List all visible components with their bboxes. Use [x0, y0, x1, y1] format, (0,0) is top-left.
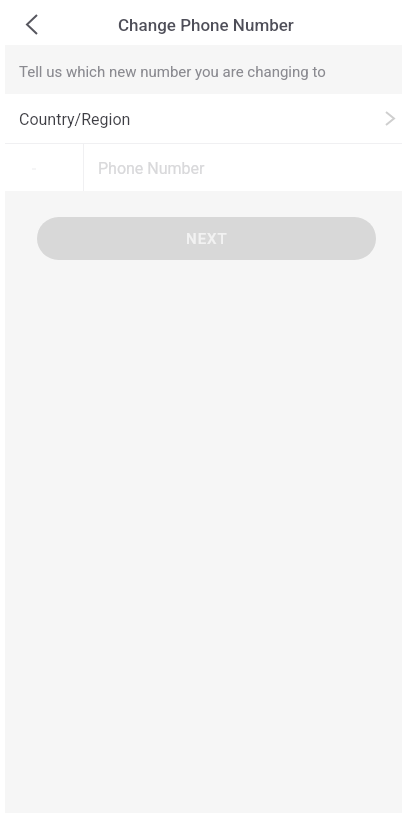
staticText: Country/Region	[19, 110, 131, 129]
button[interactable]: Country/Region	[5, 94, 402, 143]
button[interactable]: Phone Number	[84, 144, 402, 191]
staticText: Tell us which new number you are changin…	[19, 63, 326, 81]
button[interactable]: Back	[14, 6, 50, 42]
staticText: Phone Number	[98, 159, 205, 178]
staticText: NEXT	[186, 230, 228, 248]
button[interactable]: NEXT	[37, 217, 376, 260]
staticText: Change Phone Number	[118, 15, 294, 35]
